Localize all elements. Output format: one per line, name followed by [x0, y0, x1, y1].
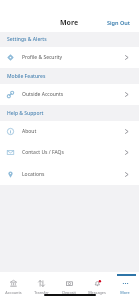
button[interactable]: Contact Us / FAQs — [0, 142, 139, 163]
staticText: Accounts — [5, 290, 22, 295]
staticText: Help & Support — [7, 110, 44, 117]
button[interactable]: Profile & Security — [0, 47, 139, 68]
staticText: Mobile Features — [7, 73, 46, 80]
staticText: Sign Out — [107, 19, 131, 26]
staticText: More — [60, 18, 79, 28]
staticText: Outside Accounts — [22, 91, 64, 98]
staticText: Contact Us / FAQs — [22, 149, 64, 156]
staticText: Transfer — [34, 290, 49, 295]
button[interactable]: Deposit — [55, 272, 83, 300]
staticText: Settings & Alerts — [7, 36, 47, 43]
staticText: Messages — [88, 290, 106, 295]
button[interactable]: About — [0, 121, 139, 142]
button[interactable]: Outside Accounts — [0, 84, 139, 105]
staticText: Locations — [22, 171, 45, 178]
staticText: Deposit — [62, 290, 76, 295]
button[interactable]: Messages — [83, 272, 111, 300]
staticText: Profile & Security — [22, 54, 63, 61]
button[interactable]: Transfer — [27, 272, 55, 300]
button[interactable]: More — [111, 272, 139, 300]
staticText: More — [120, 290, 130, 295]
staticText: About — [22, 128, 37, 135]
button[interactable]: Locations — [0, 163, 139, 185]
button[interactable]: Accounts — [0, 272, 27, 300]
button[interactable]: Sign Out — [101, 15, 139, 29]
